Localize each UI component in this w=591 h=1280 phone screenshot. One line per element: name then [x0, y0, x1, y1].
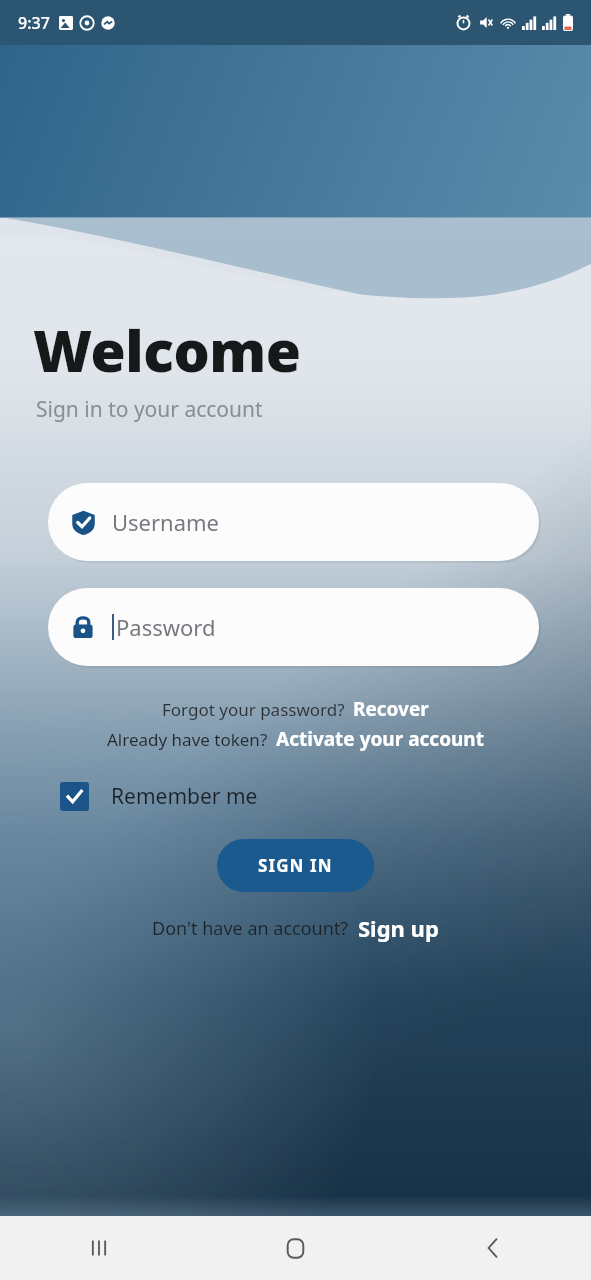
staticText: Welcome	[33, 311, 301, 389]
staticText: Don't have an account?	[152, 916, 349, 941]
button[interactable]: Sign up	[358, 913, 439, 943]
button[interactable]: Activate your account	[276, 726, 484, 752]
staticText: SIGN IN	[258, 854, 333, 877]
staticText: Sign in to your account	[36, 395, 263, 424]
button[interactable]: Remember me	[60, 782, 258, 811]
staticText: Username	[112, 507, 220, 537]
staticText: Sign up	[358, 913, 439, 943]
button[interactable]: Username	[48, 483, 539, 561]
button[interactable]: Back	[394, 1216, 591, 1280]
staticText: Password	[116, 612, 216, 642]
button[interactable]: Recent apps	[0, 1216, 197, 1280]
button[interactable]: Recover	[353, 696, 429, 722]
button[interactable]: SIGN IN	[217, 839, 374, 892]
staticText: Remember me	[111, 782, 258, 811]
button[interactable]: Home	[197, 1216, 394, 1280]
staticText: Recover	[353, 696, 429, 722]
staticText: Activate your account	[276, 726, 484, 752]
staticText: 9:37	[18, 12, 50, 34]
button[interactable]: Password	[48, 588, 539, 666]
staticText: Forgot your password?	[162, 698, 345, 721]
staticText: Already have token?	[107, 728, 268, 751]
